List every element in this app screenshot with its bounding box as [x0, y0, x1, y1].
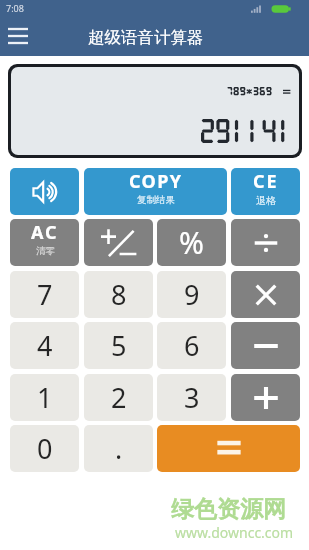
staticText: 退格 — [256, 194, 276, 207]
button[interactable]: Subtract — [231, 322, 300, 369]
button[interactable]: 9 — [157, 271, 226, 318]
button[interactable]: COPY — [84, 168, 227, 215]
staticText: www.downcc.com — [175, 523, 294, 542]
button[interactable]: 4 — [10, 322, 79, 369]
staticText: % — [179, 222, 204, 263]
staticText: 清零 — [36, 245, 55, 257]
staticText: 复制结果 — [137, 194, 175, 206]
staticText: . — [115, 430, 123, 467]
button[interactable]: 6 — [157, 322, 226, 369]
button[interactable]: % — [157, 219, 226, 266]
staticText: 5 — [111, 327, 127, 364]
button[interactable]: AC — [10, 219, 79, 266]
button[interactable]: Speak result — [10, 168, 79, 215]
button[interactable]: CE — [231, 168, 300, 215]
staticText: 6 — [184, 327, 200, 364]
staticText: 0 — [37, 430, 53, 467]
staticText: 9 — [184, 276, 200, 313]
staticText: 超级语音计算器 — [88, 27, 204, 48]
button[interactable]: Add — [231, 374, 300, 421]
button[interactable]: Equals — [157, 425, 300, 472]
button[interactable]: 3 — [157, 374, 226, 421]
button[interactable]: 2 — [84, 374, 153, 421]
button[interactable]: Divide — [231, 219, 300, 266]
button[interactable]: 7 — [10, 271, 79, 318]
button[interactable]: Plus minus sign — [84, 219, 153, 266]
button[interactable]: 5 — [84, 322, 153, 369]
staticText: CE — [253, 169, 279, 194]
staticText: 8 — [111, 276, 127, 313]
staticText: COPY — [129, 169, 183, 194]
button[interactable]: 1 — [10, 374, 79, 421]
staticText: 3 — [184, 379, 200, 416]
staticText: 4 — [37, 327, 53, 364]
staticText: 7 — [37, 276, 53, 313]
staticText: 2 — [111, 379, 127, 416]
button[interactable]: 8 — [84, 271, 153, 318]
button[interactable]: . — [84, 425, 153, 472]
staticText: 绿色资源网 — [171, 495, 286, 524]
button[interactable]: 0 — [10, 425, 79, 472]
staticText: 7:08 — [6, 2, 24, 14]
staticText: AC — [31, 220, 59, 245]
button[interactable]: Multiply — [231, 271, 300, 318]
staticText: 1 — [37, 379, 53, 416]
button[interactable]: Menu — [3, 22, 34, 47]
